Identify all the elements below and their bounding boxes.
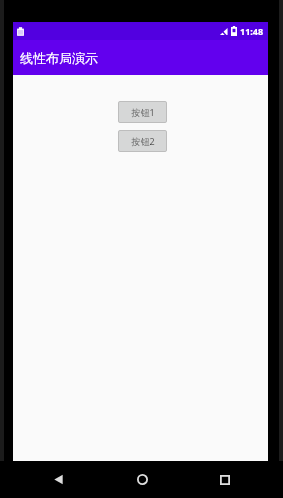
staticText: 按钮2 (131, 135, 155, 147)
staticText: 线性布局演示 (20, 50, 98, 66)
button[interactable]: 按钮1 (118, 101, 167, 123)
staticText: 11:48 (240, 25, 264, 37)
button[interactable]: Back (33, 461, 83, 498)
staticText: 按钮1 (131, 106, 155, 118)
button[interactable]: Home (117, 461, 167, 498)
button[interactable]: 按钮2 (118, 130, 167, 152)
button[interactable]: Recent apps (200, 461, 250, 498)
